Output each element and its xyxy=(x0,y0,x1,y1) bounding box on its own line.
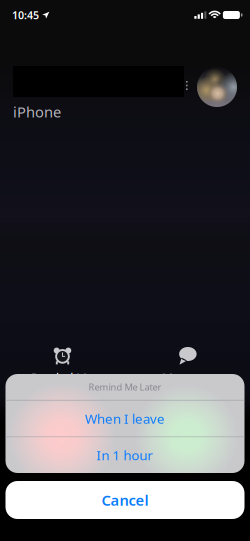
staticText: Cancel xyxy=(101,490,148,510)
staticText: 10:45 xyxy=(12,8,39,22)
button[interactable]: In 1 hour xyxy=(5,437,244,473)
button[interactable]: When I leave xyxy=(5,400,244,436)
staticText: In 1 hour xyxy=(96,446,153,464)
staticText: Remind Me xyxy=(31,370,94,386)
staticText: iPhone xyxy=(13,102,61,121)
button[interactable]: Cancel xyxy=(5,481,244,519)
staticText: When I leave xyxy=(85,410,165,427)
staticText: Remind Me Later xyxy=(88,381,161,393)
button[interactable]: Remind Me xyxy=(0,347,125,385)
button[interactable]: Message xyxy=(125,347,250,385)
staticText: Message xyxy=(162,370,213,386)
